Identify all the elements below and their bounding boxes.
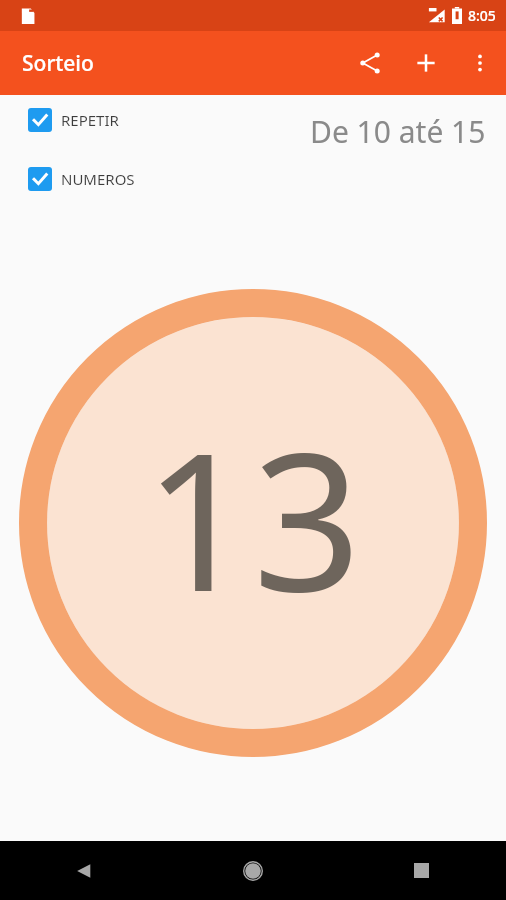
- button[interactable]: De 10 até 15: [276, 103, 506, 159]
- button[interactable]: Home: [168, 841, 337, 900]
- staticText: Sorteio: [22, 49, 94, 78]
- button[interactable]: 13: [19, 289, 487, 757]
- staticText: NUMEROS: [61, 169, 135, 189]
- staticText: De 10 até 15: [310, 111, 486, 152]
- button[interactable]: Back: [0, 841, 168, 900]
- staticText: 8:05: [468, 6, 496, 25]
- staticText: REPETIR: [61, 110, 119, 130]
- button[interactable]: More options: [454, 37, 506, 89]
- staticText: 13: [144, 388, 362, 647]
- button[interactable]: Recent apps: [337, 841, 506, 900]
- button[interactable]: REPETIR: [0, 103, 276, 137]
- button[interactable]: Share: [342, 35, 398, 91]
- button[interactable]: NUMEROS: [0, 162, 276, 196]
- button[interactable]: Add: [398, 35, 454, 91]
